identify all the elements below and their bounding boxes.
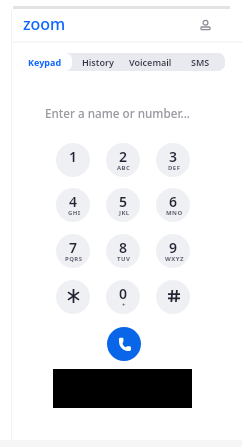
staticText: 5	[119, 192, 128, 211]
staticText: Voicemail	[129, 56, 172, 68]
staticText: GHI	[68, 209, 81, 217]
staticText: 3	[169, 147, 178, 166]
staticText: Enter a name or number...	[45, 105, 190, 121]
button[interactable]: 0	[106, 280, 140, 314]
button[interactable]: SMS	[176, 53, 225, 71]
button[interactable]: Account	[196, 15, 215, 35]
staticText: 2	[119, 147, 128, 166]
button[interactable]: 3	[156, 143, 190, 177]
button[interactable]: 5	[106, 188, 140, 222]
button[interactable]: Keypad	[18, 53, 72, 71]
staticText: 6	[169, 192, 178, 211]
staticText: 9	[169, 238, 178, 257]
button[interactable]: 7	[56, 234, 90, 268]
button[interactable]: 9	[156, 234, 190, 268]
staticText: 1	[69, 147, 78, 166]
staticText: +	[122, 301, 126, 309]
staticText: WXYZ	[165, 255, 184, 263]
staticText: ABC	[117, 164, 131, 172]
staticText: JKL	[119, 209, 130, 217]
button[interactable]: Call	[107, 327, 141, 361]
staticText: 7	[69, 238, 78, 257]
staticText: zoom	[23, 13, 65, 35]
staticText: 0	[119, 284, 128, 303]
staticText: 8	[119, 238, 128, 257]
staticText: MNO	[166, 209, 183, 217]
button[interactable]: Voicemail	[124, 53, 176, 71]
button[interactable]: 1	[56, 143, 90, 177]
staticText: SMS	[191, 56, 210, 68]
staticText: 4	[69, 192, 78, 211]
button[interactable]: #	[156, 280, 190, 314]
button[interactable]: 6	[156, 188, 190, 222]
staticText: History	[82, 56, 114, 68]
staticText: Keypad	[28, 56, 62, 68]
staticText: PQRS	[65, 255, 83, 263]
button[interactable]: History	[72, 53, 124, 71]
button[interactable]: 8	[106, 234, 140, 268]
staticText: DEF	[168, 164, 181, 172]
button[interactable]: *	[56, 280, 90, 314]
button[interactable]: 2	[106, 143, 140, 177]
staticText: TUV	[117, 255, 131, 263]
button[interactable]: 4	[56, 188, 90, 222]
